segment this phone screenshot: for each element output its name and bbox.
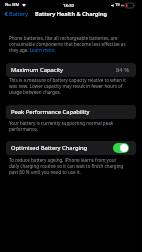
staticText: Optimised Battery Charging bbox=[11, 144, 88, 152]
button[interactable]: Battery bbox=[3, 10, 29, 18]
staticText: 18:30 bbox=[63, 2, 74, 8]
staticText: This is a measure of battery capacity re… bbox=[9, 77, 126, 95]
staticText: Your battery is currently supporting nor… bbox=[9, 120, 126, 132]
staticText: To reduce battery ageing, iPhone learns … bbox=[9, 157, 126, 175]
staticText: Maximum Capacity bbox=[11, 66, 64, 74]
staticText: Battery bbox=[9, 10, 29, 18]
staticText: 19 bbox=[115, 2, 120, 8]
staticText: Battery Health & Charging bbox=[35, 10, 107, 18]
button[interactable]: Optimised Battery Charging bbox=[6, 141, 136, 155]
button[interactable]: Optimised Battery Charging toggle bbox=[113, 143, 129, 153]
button[interactable]: Peak Performance Capability bbox=[6, 105, 136, 119]
staticText: 84 % bbox=[116, 66, 129, 74]
staticText: Phone batteries, like all rechargeable b… bbox=[9, 35, 126, 53]
button[interactable]: Maximum Capacity bbox=[6, 63, 136, 77]
staticText: Peak Performance Capability bbox=[11, 108, 90, 116]
staticText: No SIM bbox=[5, 2, 20, 8]
